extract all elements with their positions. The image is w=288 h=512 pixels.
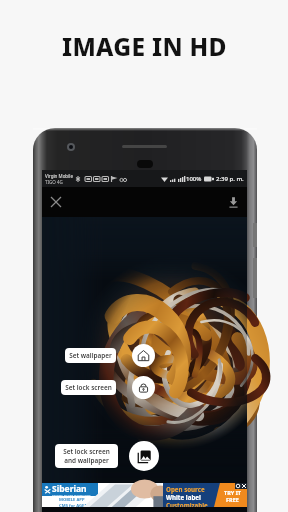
staticText: 100% xyxy=(186,175,202,183)
staticText: 2:39 p. m. xyxy=(216,175,244,183)
button[interactable]: Set wallpaper xyxy=(132,344,155,367)
button[interactable]: Set lock screen xyxy=(61,380,116,395)
staticText: Virgin Mobile xyxy=(45,173,73,179)
staticText: CMS for AGENCIES xyxy=(59,503,97,509)
staticText: Customizable xyxy=(166,501,208,509)
staticText: IMAGE IN HD xyxy=(62,30,227,63)
staticText: BECOME AN APP MAKER HERO xyxy=(52,495,91,496)
button[interactable]: Advertisement xyxy=(42,483,247,507)
button[interactable]: Download xyxy=(221,190,245,214)
staticText: Open source xyxy=(166,485,205,493)
staticText: MOBILE APP xyxy=(59,497,85,503)
button[interactable]: Set lock screen and wallpaper xyxy=(129,441,159,471)
button[interactable]: Set wallpaper xyxy=(65,348,116,363)
button[interactable]: Set lock screen xyxy=(132,376,155,399)
button[interactable]: Close xyxy=(44,190,68,214)
staticText: Set lock screen xyxy=(65,383,112,392)
staticText: TRY IT xyxy=(224,489,241,496)
staticText: White label xyxy=(166,493,201,501)
staticText: Set wallpaper xyxy=(69,351,112,360)
staticText: Siberian xyxy=(52,483,87,495)
button[interactable]: Set lock screen and wallpaper xyxy=(55,444,118,468)
staticText: Set lock screen and wallpaper xyxy=(63,447,110,465)
staticText: TIGO 4G xyxy=(45,179,63,185)
staticText: FREE xyxy=(226,496,239,503)
button[interactable]: Close ad xyxy=(241,483,247,489)
